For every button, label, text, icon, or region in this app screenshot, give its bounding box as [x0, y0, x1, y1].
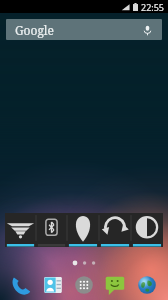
- button[interactable]: Sync: [99, 213, 131, 247]
- button[interactable]: Wi-Fi: [5, 213, 36, 247]
- staticText: Google: [15, 22, 55, 38]
- button[interactable]: Brightness: [131, 213, 163, 247]
- button[interactable]: Contacts: [40, 272, 66, 298]
- button[interactable]: Messaging: [102, 272, 128, 298]
- button[interactable]: Voice search: [140, 23, 154, 37]
- staticText: 22:55: [141, 1, 165, 13]
- button[interactable]: Bluetooth: [36, 213, 67, 247]
- button[interactable]: Browser: [134, 272, 160, 298]
- button[interactable]: Phone: [8, 272, 34, 298]
- button[interactable]: Google: [6, 19, 162, 40]
- button[interactable]: Apps: [71, 272, 97, 298]
- button[interactable]: Location: [67, 213, 99, 247]
